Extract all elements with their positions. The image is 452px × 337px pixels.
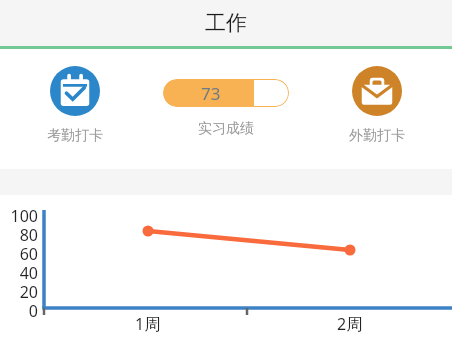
other: 外勤打卡: [352, 66, 402, 116]
staticText: 1周: [135, 313, 161, 335]
staticText: 工作: [205, 10, 247, 36]
staticText: 20: [19, 281, 38, 303]
button[interactable]: 外勤打卡: [301, 49, 452, 169]
staticText: 实习成绩: [198, 120, 254, 138]
other: 考勤打卡: [50, 66, 100, 116]
staticText: 0: [28, 300, 38, 322]
staticText: 80: [19, 224, 38, 246]
staticText: 60: [19, 243, 38, 265]
button[interactable]: 考勤打卡: [0, 49, 150, 169]
staticText: 2周: [337, 313, 363, 335]
button[interactable]: 73: [150, 49, 301, 169]
staticText: 外勤打卡: [349, 127, 405, 145]
staticText: 73: [201, 82, 221, 105]
staticText: 40: [19, 262, 38, 284]
staticText: 考勤打卡: [47, 127, 103, 145]
staticText: 100: [10, 205, 38, 227]
